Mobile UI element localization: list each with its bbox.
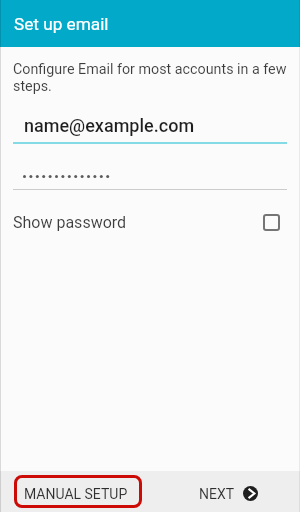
staticText: Set up email — [14, 14, 109, 34]
staticText: NEXT — [199, 486, 235, 502]
button[interactable]: Show password — [0, 206, 300, 239]
staticText: name@example.com — [24, 115, 195, 136]
other: Next — [243, 486, 258, 501]
button[interactable]: NEXT — [199, 478, 258, 508]
staticText: Show password — [13, 213, 127, 232]
button[interactable]: MANUAL SETUP — [14, 475, 142, 508]
staticText: Configure Email for most accounts in a f… — [13, 61, 289, 95]
staticText: MANUAL SETUP — [24, 486, 128, 502]
